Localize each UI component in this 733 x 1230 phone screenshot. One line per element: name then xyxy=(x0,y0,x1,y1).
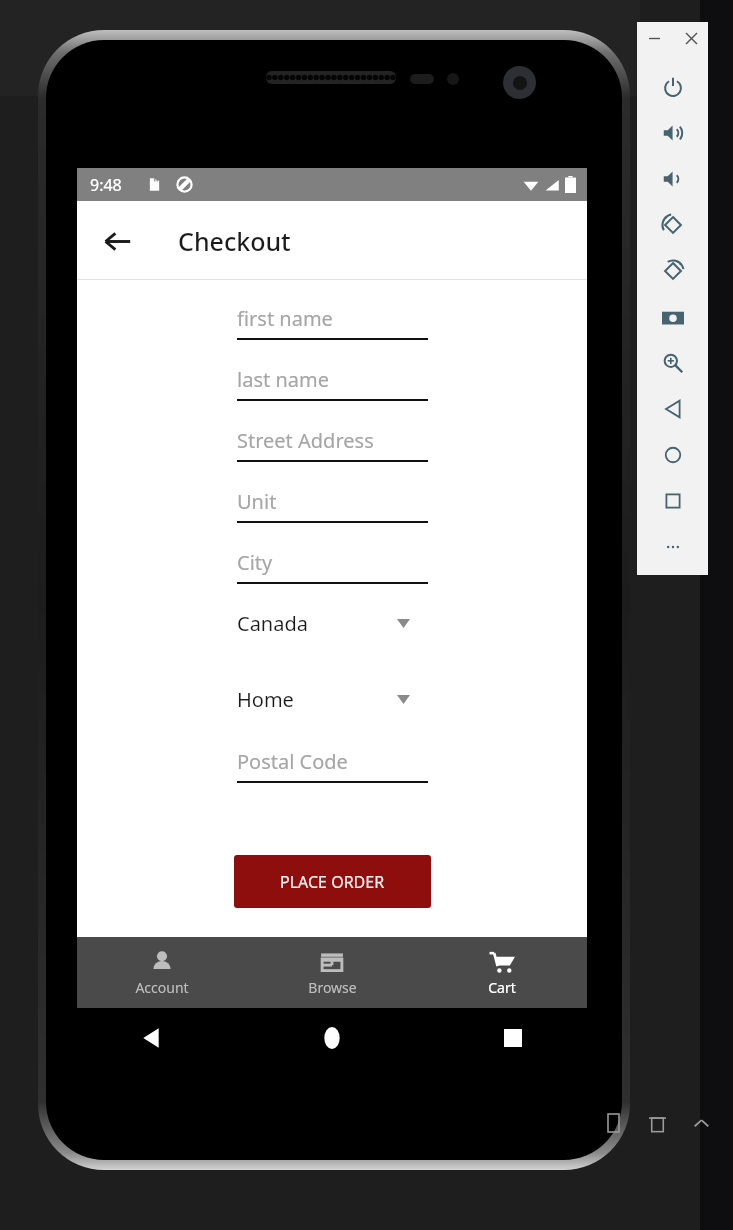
button[interactable]: Expand xyxy=(688,1110,714,1136)
button[interactable]: Browse xyxy=(247,937,417,1008)
button[interactable]: Cart xyxy=(417,937,587,1008)
button[interactable]: Postal Code xyxy=(237,741,428,783)
staticText: 9:48 xyxy=(90,174,122,196)
button[interactable]: PLACE ORDER xyxy=(234,855,431,908)
button[interactable]: Account xyxy=(77,937,247,1008)
staticText: Unit xyxy=(237,488,277,515)
button[interactable]: Minimize xyxy=(643,27,665,49)
button[interactable]: Home xyxy=(310,1016,354,1060)
button[interactable]: Canada xyxy=(237,606,428,640)
staticText: Home xyxy=(237,686,294,713)
button[interactable]: first name xyxy=(237,298,428,340)
button[interactable]: Back xyxy=(129,1016,173,1060)
staticText: City xyxy=(237,549,273,576)
staticText: Browse xyxy=(308,978,357,997)
button[interactable]: Home xyxy=(237,682,428,716)
staticText: first name xyxy=(237,305,333,332)
button[interactable]: Zoom xyxy=(650,340,696,386)
button[interactable]: Overview xyxy=(650,478,696,524)
button[interactable]: Screenshot xyxy=(650,294,696,340)
button[interactable]: Unit xyxy=(237,481,428,523)
staticText: Checkout xyxy=(178,224,291,258)
button[interactable]: Close xyxy=(680,27,702,49)
staticText: PLACE ORDER xyxy=(280,871,385,893)
button[interactable]: Delete xyxy=(644,1110,670,1136)
button[interactable]: Home xyxy=(650,432,696,478)
staticText: Account xyxy=(135,978,189,997)
button[interactable]: City xyxy=(237,542,428,584)
button[interactable]: Rotate right xyxy=(650,248,696,294)
button[interactable]: Street Address xyxy=(237,420,428,462)
button[interactable]: Rotate left xyxy=(650,202,696,248)
button[interactable]: Back xyxy=(93,217,141,265)
staticText: Street Address xyxy=(237,427,374,454)
staticText: last name xyxy=(237,366,329,393)
button[interactable]: Device xyxy=(600,1110,626,1136)
staticText: Postal Code xyxy=(237,748,348,775)
button[interactable]: Recents xyxy=(491,1016,535,1060)
staticText: Cart xyxy=(488,978,516,997)
button[interactable]: Back xyxy=(650,386,696,432)
button[interactable]: Power xyxy=(650,64,696,110)
button[interactable]: More xyxy=(650,524,696,570)
staticText: Canada xyxy=(237,610,308,637)
button[interactable]: Volume down xyxy=(650,156,696,202)
button[interactable]: last name xyxy=(237,359,428,401)
button[interactable]: Volume up xyxy=(650,110,696,156)
